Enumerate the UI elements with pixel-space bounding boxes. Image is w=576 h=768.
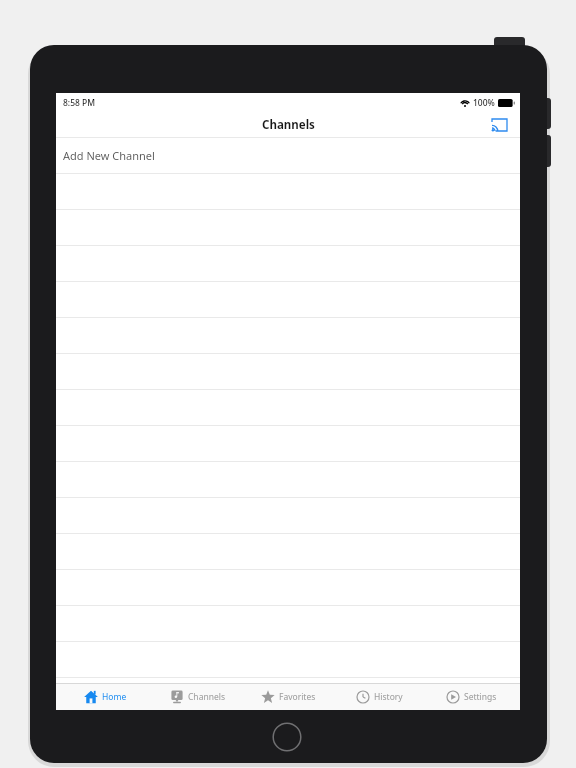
button[interactable]: Cast xyxy=(487,113,511,137)
staticText: Favorites xyxy=(279,691,316,703)
button[interactable]: Favorites xyxy=(246,684,330,710)
staticText: Channels xyxy=(188,691,225,703)
button[interactable]: Channels xyxy=(155,684,239,710)
button[interactable]: Add New Channel xyxy=(56,138,520,173)
staticText: History xyxy=(374,691,403,703)
staticText: 100% xyxy=(473,97,495,109)
staticText: Home xyxy=(102,691,127,703)
staticText: Add New Channel xyxy=(63,148,155,163)
staticText: 8:58 PM xyxy=(63,97,96,109)
button[interactable]: Settings xyxy=(429,684,513,710)
button[interactable]: History xyxy=(337,684,421,710)
staticText: Settings xyxy=(464,691,497,703)
staticText: Channels xyxy=(262,117,315,133)
button[interactable]: Home xyxy=(63,684,147,710)
